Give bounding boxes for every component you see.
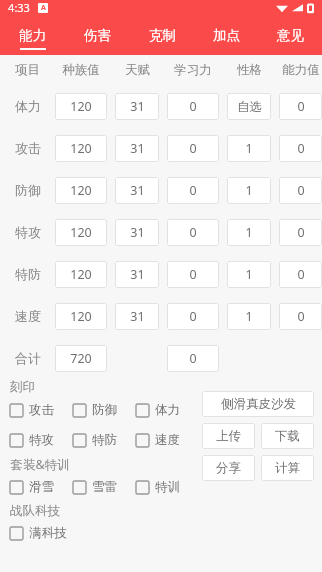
button[interactable]: 克制 (130, 22, 194, 55)
staticText: 战队科技 (10, 503, 60, 519)
staticText: A (41, 3, 46, 13)
button[interactable]: 120 (55, 93, 107, 120)
button[interactable]: 31 (115, 261, 159, 288)
button[interactable]: 120 (55, 219, 107, 246)
button[interactable]: 1 (227, 177, 271, 204)
staticText: 加点 (213, 27, 240, 44)
button[interactable]: 特训 (136, 476, 199, 498)
staticText: 种族值 (62, 62, 100, 78)
button[interactable]: 31 (115, 177, 159, 204)
button[interactable]: 特防 (73, 429, 136, 451)
staticText: 计算 (275, 460, 300, 476)
button[interactable]: 0 (167, 219, 219, 246)
staticText: 学习力 (174, 62, 212, 78)
staticText: 体力 (155, 402, 180, 418)
staticText: 自选 (237, 99, 262, 115)
button[interactable]: 120 (55, 135, 107, 162)
staticText: 速度 (155, 432, 180, 448)
button[interactable]: 上传 (202, 423, 255, 449)
staticText: 0 (297, 98, 305, 115)
staticText: 120 (70, 98, 92, 115)
staticText: 能力 (19, 27, 46, 44)
staticText: 天赋 (125, 62, 150, 78)
staticText: 1 (245, 266, 253, 283)
button[interactable]: 0 (167, 303, 219, 330)
button[interactable]: 1 (227, 219, 271, 246)
staticText: 120 (70, 308, 92, 325)
button[interactable]: 意见 (258, 22, 322, 55)
button[interactable]: 0 (167, 261, 219, 288)
staticText: 1 (245, 182, 253, 199)
button[interactable]: 1 (227, 261, 271, 288)
staticText: 31 (130, 308, 145, 325)
staticText: 防御 (15, 182, 41, 198)
button[interactable]: 伤害 (65, 22, 130, 55)
button[interactable]: 攻击 (10, 399, 73, 421)
staticText: 特防 (92, 432, 117, 448)
button[interactable]: 120 (55, 177, 107, 204)
staticText: 体力 (15, 98, 41, 114)
button[interactable]: 滑雪 (10, 476, 73, 498)
staticText: 31 (130, 182, 145, 199)
staticText: 特防 (15, 266, 41, 282)
staticText: 克制 (149, 27, 176, 44)
button[interactable]: 31 (115, 93, 159, 120)
staticText: 0 (297, 182, 305, 199)
staticText: 滑雪 (29, 479, 54, 495)
button[interactable]: 0 (279, 261, 322, 288)
staticText: 4:33 (8, 0, 30, 15)
staticText: 120 (70, 266, 92, 283)
button[interactable]: 31 (115, 303, 159, 330)
staticText: 1 (245, 308, 253, 325)
staticText: 上传 (216, 428, 241, 444)
staticText: 性格 (237, 62, 262, 78)
button[interactable]: 能力 (0, 22, 65, 55)
button[interactable]: 31 (115, 135, 159, 162)
button[interactable]: 1 (227, 303, 271, 330)
staticText: 合计 (15, 350, 41, 366)
staticText: 0 (189, 308, 197, 325)
button[interactable]: 0 (279, 177, 322, 204)
staticText: 雪雷 (92, 479, 117, 495)
staticText: 特攻 (15, 224, 41, 240)
staticText: 1 (245, 224, 253, 241)
button[interactable]: 120 (55, 261, 107, 288)
staticText: 0 (189, 182, 197, 199)
button[interactable]: 速度 (136, 429, 199, 451)
button[interactable]: 0 (167, 135, 219, 162)
staticText: 0 (297, 140, 305, 157)
button[interactable]: 加点 (194, 22, 258, 55)
button[interactable]: 体力 (136, 399, 199, 421)
button[interactable]: 0 (167, 93, 219, 120)
button[interactable]: 0 (279, 93, 322, 120)
staticText: 意见 (277, 27, 304, 44)
button[interactable]: 特攻 (10, 429, 73, 451)
staticText: 下载 (275, 428, 300, 444)
staticText: 31 (130, 98, 145, 115)
button[interactable]: 雪雷 (73, 476, 136, 498)
staticText: 刻印 (10, 379, 35, 395)
staticText: 速度 (15, 308, 41, 324)
button[interactable]: 自选 (227, 93, 271, 120)
button[interactable]: 31 (115, 219, 159, 246)
button[interactable]: 0 (167, 345, 219, 372)
staticText: 0 (189, 224, 197, 241)
staticText: 31 (130, 140, 145, 157)
staticText: 分享 (216, 460, 241, 476)
button[interactable]: 0 (279, 219, 322, 246)
button[interactable]: 满科技 (10, 522, 80, 544)
staticText: 特攻 (29, 432, 54, 448)
staticText: 防御 (92, 402, 117, 418)
button[interactable]: 侧滑真皮沙发 (202, 391, 314, 417)
button[interactable]: 分享 (202, 455, 255, 481)
staticText: 套装&特训 (10, 456, 70, 473)
button[interactable]: 0 (279, 303, 322, 330)
button[interactable]: 下载 (261, 423, 314, 449)
button[interactable]: 720 (55, 345, 107, 372)
button[interactable]: 计算 (261, 455, 314, 481)
button[interactable]: 1 (227, 135, 271, 162)
button[interactable]: 防御 (73, 399, 136, 421)
button[interactable]: 120 (55, 303, 107, 330)
button[interactable]: 0 (279, 135, 322, 162)
button[interactable]: 0 (167, 177, 219, 204)
